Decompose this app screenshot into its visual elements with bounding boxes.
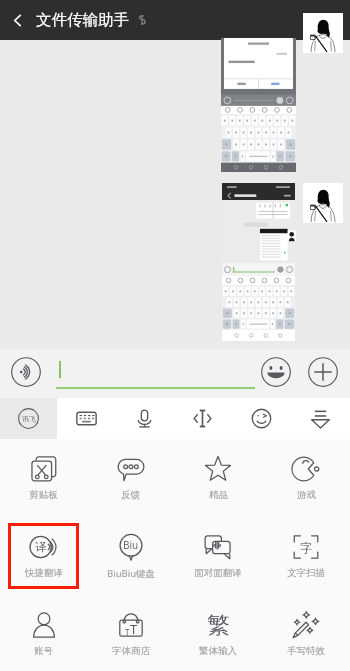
button[interactable]: Biu [87, 517, 174, 595]
button[interactable]: More options [310, 0, 350, 40]
button[interactable]: 精品 [174, 439, 262, 517]
staticText: 账号 [34, 645, 53, 657]
staticText: T [125, 627, 130, 638]
button[interactable]: 剪贴板 [0, 439, 87, 517]
button[interactable]: 译 [0, 517, 87, 595]
button[interactable]: 繁 [174, 595, 262, 671]
button[interactable]: 面对面翻译 [174, 517, 262, 595]
button[interactable]: Emoticons [232, 398, 291, 439]
staticText: 繁体输入 [199, 645, 237, 657]
staticText: 精品 [209, 489, 228, 501]
staticText: 快捷翻译 [25, 567, 63, 579]
staticText: 反馈 [121, 489, 140, 501]
button[interactable]: Voice input [11, 357, 41, 387]
staticText: 面对面翻译 [194, 567, 242, 579]
button[interactable]: 反馈 [87, 439, 174, 517]
staticText: 游戏 [297, 489, 316, 501]
button[interactable]: Emoji [261, 357, 291, 387]
button[interactable]: Voice [115, 398, 173, 439]
button[interactable]: Keyboard [57, 398, 115, 439]
button[interactable]: Input method [0, 398, 57, 439]
staticText: 文件传输助手 [36, 10, 129, 30]
button[interactable]: 游戏 [262, 439, 350, 517]
button[interactable]: Avatar [303, 13, 343, 53]
staticText: 繁 [207, 611, 230, 639]
staticText: BiuBiu键盘 [107, 567, 155, 580]
button[interactable]: 字 [262, 517, 350, 595]
staticText: 字体商店 [112, 645, 150, 657]
button[interactable]: T [87, 595, 174, 671]
staticText: Biu [123, 538, 139, 552]
button[interactable]: 账号 [0, 595, 87, 671]
button[interactable] [222, 183, 295, 341]
button[interactable]: More functions [308, 357, 338, 387]
button[interactable] [221, 38, 296, 172]
button[interactable]: Back [0, 0, 34, 40]
staticText: 译 [35, 540, 47, 554]
staticText: 字 [300, 540, 312, 555]
staticText: 文字扫描 [287, 567, 325, 579]
staticText: 剪贴板 [29, 489, 58, 501]
staticText: 讯飞 [22, 414, 36, 423]
button[interactable]: Move cursor [173, 398, 232, 439]
button[interactable] [303, 183, 343, 223]
button[interactable]: 手写特效 [262, 595, 350, 671]
staticText: 手写特效 [287, 645, 325, 657]
button[interactable]: Hide keyboard [291, 398, 350, 439]
staticText: T [130, 620, 138, 638]
